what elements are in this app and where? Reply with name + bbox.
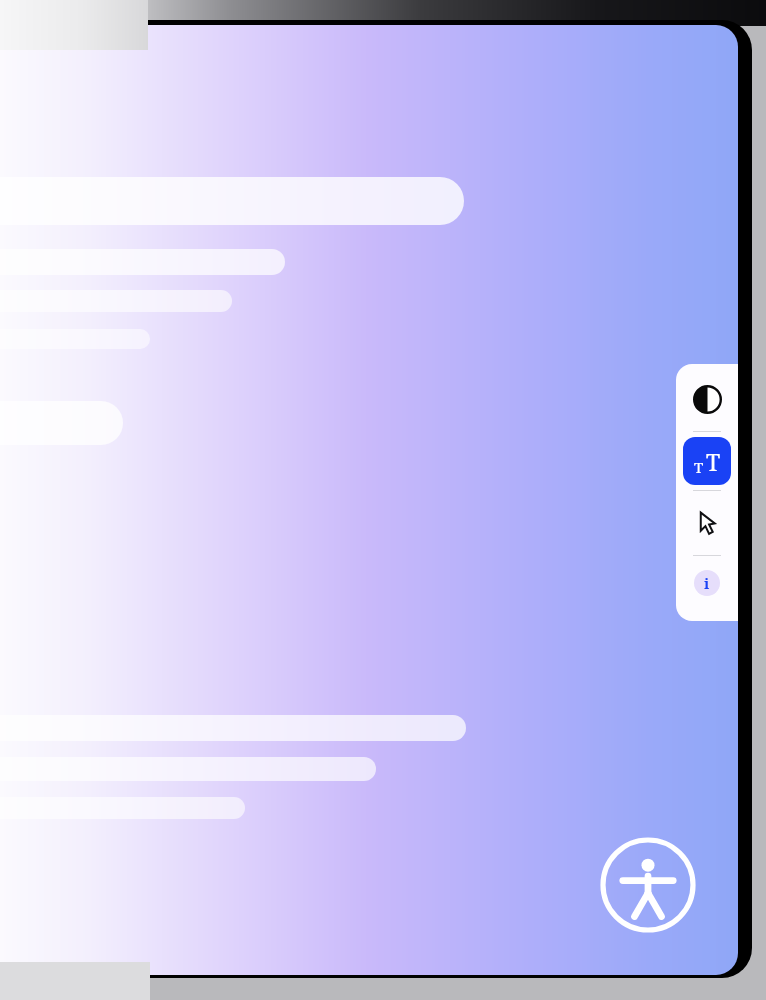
button[interactable]: Information [685,561,729,605]
staticText: T [706,446,721,477]
button[interactable]: Accessibility menu [599,836,697,934]
staticText: i [704,573,710,593]
button[interactable]: Text size [683,437,731,485]
staticText: T [694,457,704,477]
button[interactable]: Cursor size [680,496,734,550]
button[interactable]: Contrast [680,372,734,426]
